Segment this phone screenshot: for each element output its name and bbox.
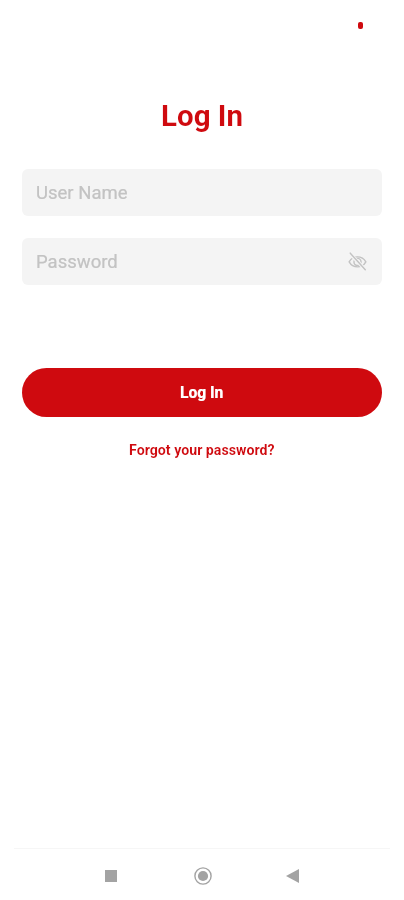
button[interactable]: Show password	[344, 248, 370, 274]
button[interactable]: User Name	[22, 169, 382, 216]
staticText: User Name	[36, 182, 128, 204]
button[interactable]: Back	[269, 852, 317, 900]
staticText: Password	[36, 251, 118, 273]
staticText: Forgot your password?	[129, 442, 275, 459]
button[interactable]: Recent apps	[87, 852, 135, 900]
staticText: Log In	[180, 384, 224, 402]
button[interactable]: Password	[22, 238, 382, 285]
button[interactable]: Home	[179, 852, 227, 900]
staticText: Log In	[0, 99, 404, 134]
button[interactable]: Forgot your password?	[121, 438, 283, 463]
button[interactable]: Log In	[22, 368, 382, 417]
